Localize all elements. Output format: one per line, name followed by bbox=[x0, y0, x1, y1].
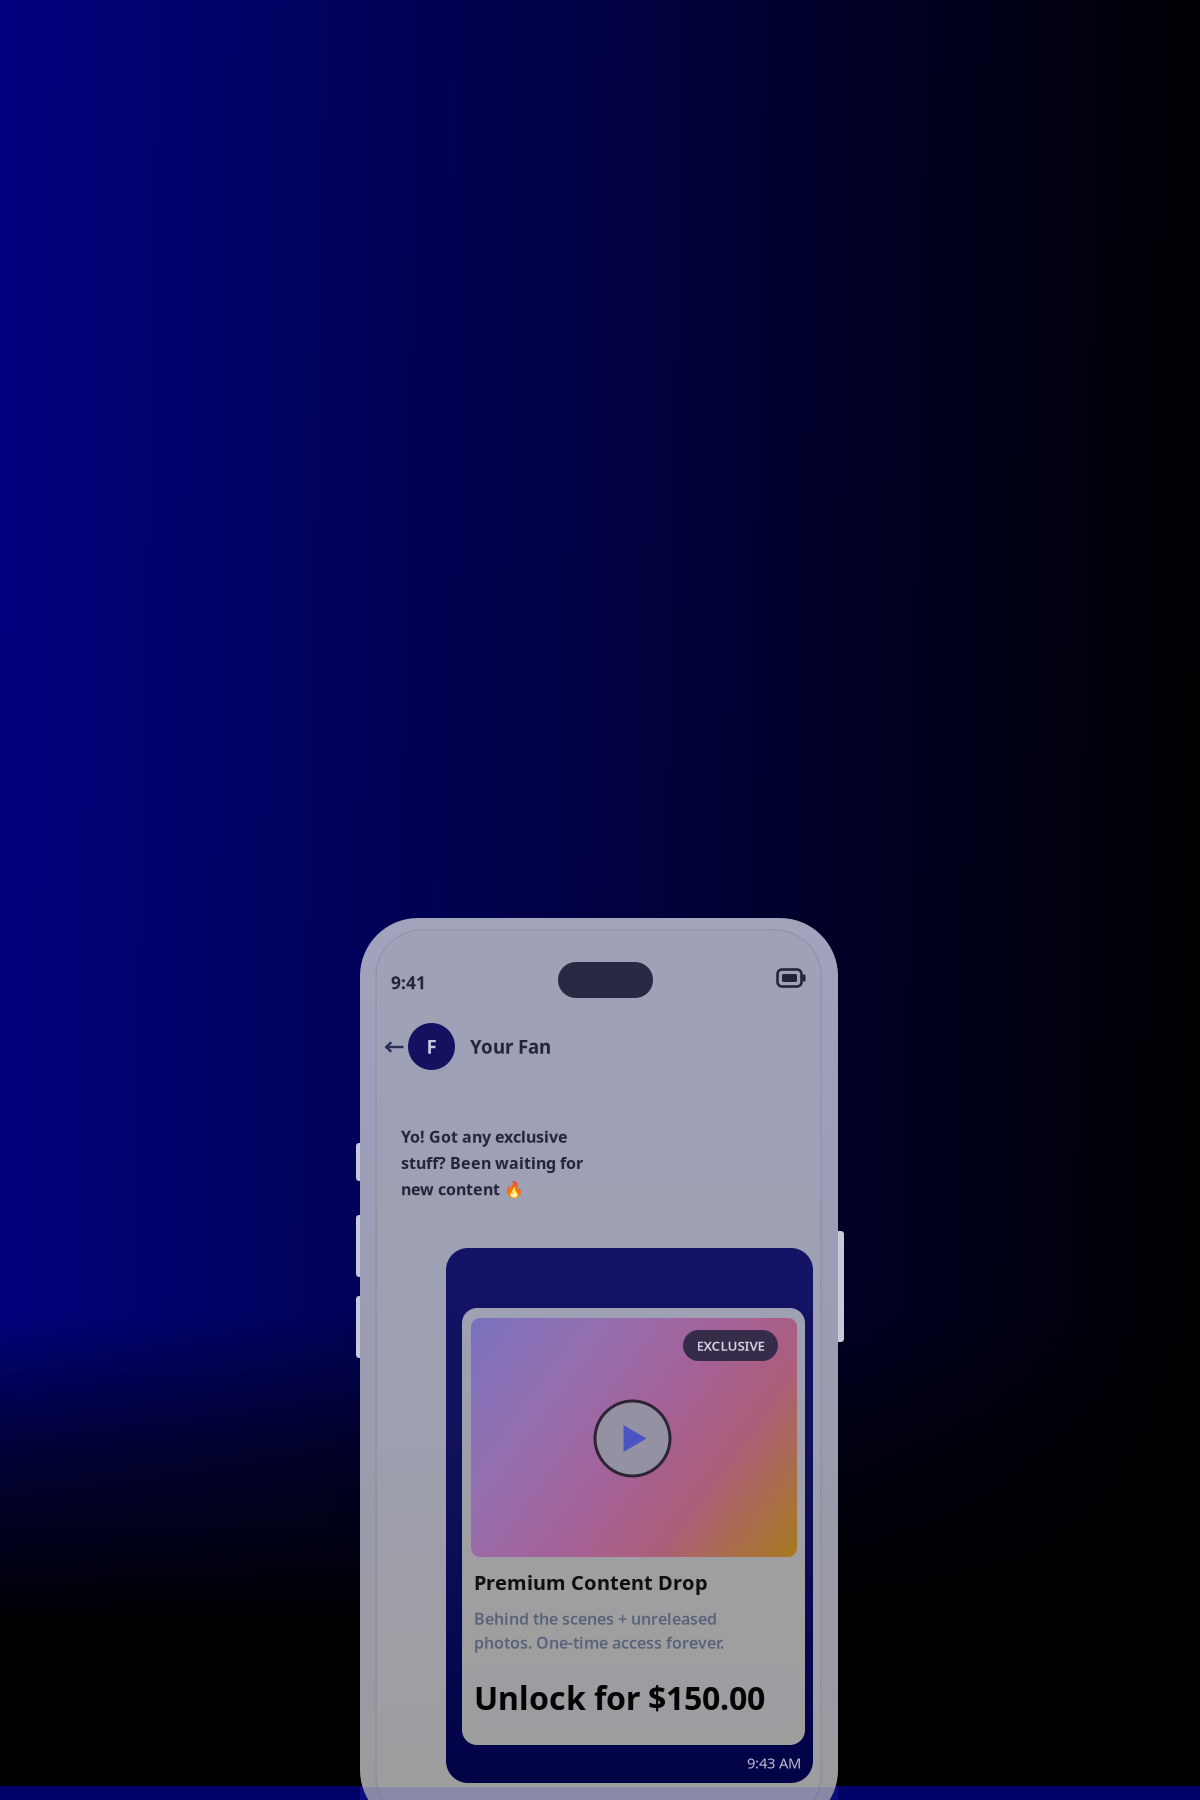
staticText: photos. One-time access forever. bbox=[474, 1632, 724, 1653]
staticText: 9:43 AM bbox=[747, 1753, 801, 1772]
button[interactable]: F bbox=[408, 1023, 551, 1070]
staticText: new content 🔥 bbox=[401, 1178, 524, 1200]
staticText: stuff? Been waiting for bbox=[401, 1152, 583, 1173]
staticText: EXCLUSIVE bbox=[696, 1337, 764, 1354]
staticText: Unlock for $150.00 bbox=[474, 1676, 765, 1719]
staticText: Yo! Got any exclusive bbox=[401, 1126, 568, 1147]
staticText: Premium Content Drop bbox=[474, 1569, 708, 1596]
staticText: 9:41 bbox=[391, 971, 426, 994]
staticText: Behind the scenes + unreleased bbox=[474, 1608, 717, 1629]
staticText: Your Fan bbox=[470, 1034, 551, 1059]
button[interactable]: Back bbox=[379, 1031, 411, 1063]
button[interactable]: Unlock for $150.00 bbox=[474, 1668, 795, 1727]
staticText: F bbox=[426, 1034, 436, 1059]
